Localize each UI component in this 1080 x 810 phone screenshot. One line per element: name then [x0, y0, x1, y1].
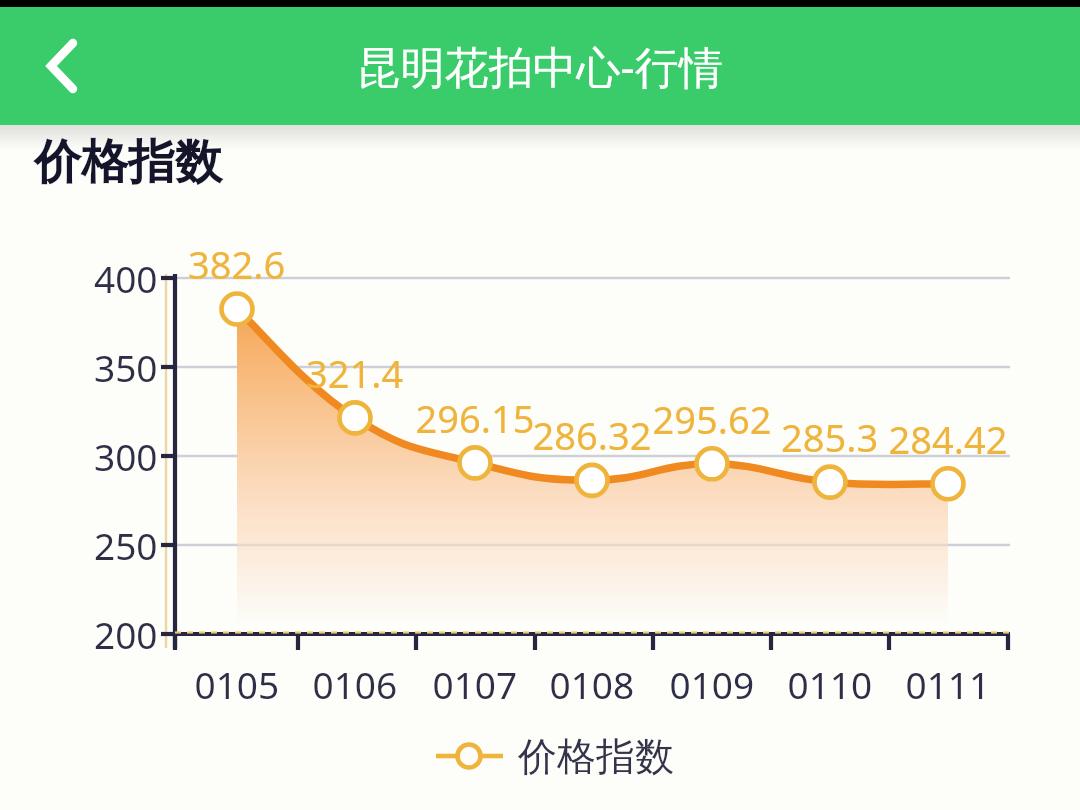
button[interactable]: Back — [24, 28, 102, 106]
